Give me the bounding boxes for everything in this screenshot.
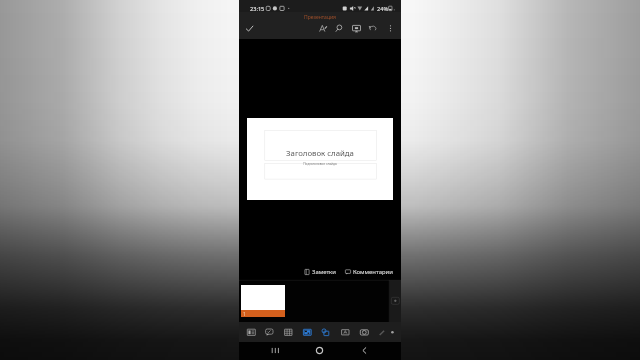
staticText: 24% [377,5,389,13]
button[interactable]: 1 [241,285,285,318]
button[interactable]: Recent apps [268,343,283,358]
staticText: Презентация [239,14,401,41]
button[interactable]: Search [332,21,347,36]
button[interactable]: Done [242,21,257,36]
button[interactable]: Camera [357,325,371,339]
button[interactable]: Shapes [318,325,332,339]
button[interactable]: Slide layout [244,325,258,339]
button[interactable]: Home [312,343,327,358]
button[interactable]: Table [281,325,295,339]
staticText: Комментарии [353,268,393,276]
button[interactable]: New slide [391,297,400,305]
button[interactable]: Draw [375,325,389,339]
button[interactable]: Back [357,343,372,358]
staticText: Подзаголовок слайда [247,162,393,244]
staticText: Заметки [312,268,336,276]
button[interactable]: Present [349,21,364,36]
button[interactable]: Заголовок слайда [247,118,393,200]
staticText: 23:15 [250,5,265,13]
button[interactable]: Picture [300,325,314,339]
button[interactable]: Text box [338,325,352,339]
button[interactable]: Comment [262,325,276,339]
button[interactable]: Undo [365,21,380,36]
button[interactable]: More options [383,21,398,36]
button[interactable]: Format text [316,21,331,36]
staticText: Заголовок слайда [247,148,393,230]
staticText: 1 [243,311,246,318]
button[interactable]: Комментарии [344,268,394,276]
button[interactable]: Заметки [303,268,337,276]
